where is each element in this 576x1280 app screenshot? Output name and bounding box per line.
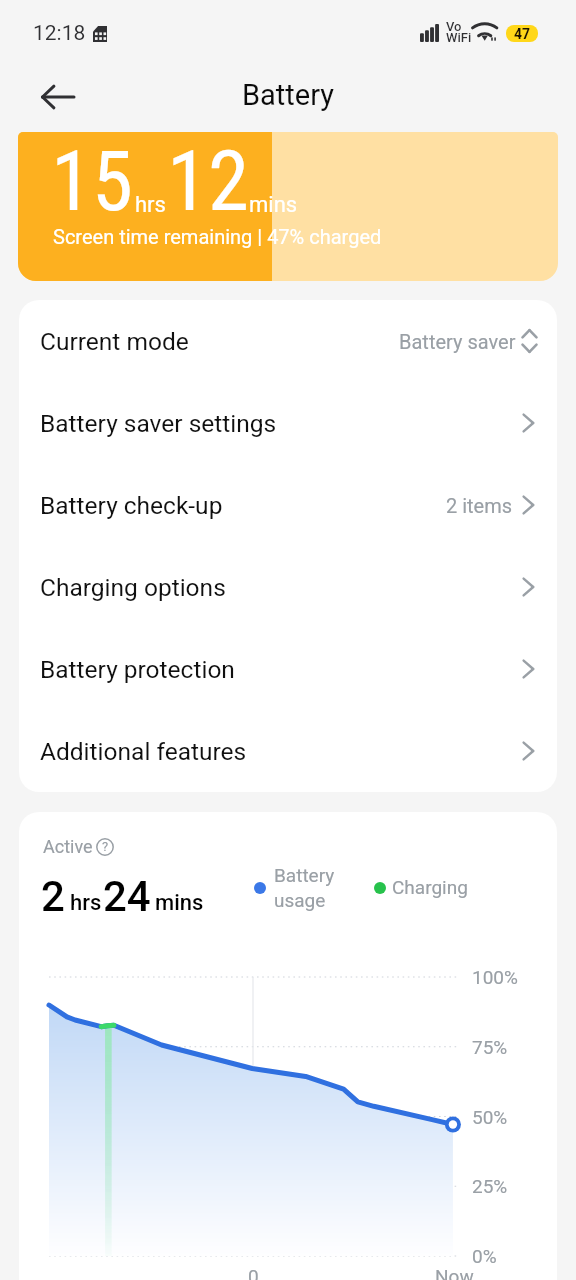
staticText: mins (249, 192, 298, 218)
staticText: 24 (103, 872, 151, 921)
staticText: Now (435, 1265, 474, 1280)
staticText: ? (102, 839, 109, 854)
staticText: 100% (472, 966, 518, 988)
staticText: 50% (472, 1106, 508, 1128)
button[interactable]: Battery check-up (19, 464, 557, 546)
button[interactable]: Charging options (19, 546, 557, 628)
button[interactable]: Additional features (19, 710, 557, 792)
button[interactable]: Current mode (19, 300, 557, 382)
button[interactable]: Help about active time (95, 837, 115, 857)
staticText: 15 (51, 133, 133, 230)
staticText: Battery saver settings (40, 409, 277, 438)
staticText: 47 (514, 26, 531, 42)
staticText: mins (155, 890, 204, 916)
staticText: 2 items (446, 494, 513, 517)
staticText: Active (43, 836, 93, 857)
staticText: WiFi (446, 30, 472, 45)
staticText: Battery protection (40, 655, 235, 684)
staticText: hrs (135, 192, 166, 218)
staticText: Battery check-up (40, 491, 223, 520)
staticText: 0% (472, 1245, 497, 1267)
staticText: Battery (242, 78, 334, 112)
staticText: hrs (70, 890, 102, 916)
staticText: 0 (248, 1265, 259, 1280)
staticText: Charging options (40, 573, 226, 602)
button[interactable]: Battery saver settings (19, 382, 557, 464)
staticText: Screen time remaining | 47% charged (53, 225, 382, 248)
staticText: 2 (41, 872, 65, 921)
staticText: 75% (472, 1036, 508, 1058)
button[interactable]: 15 (18, 132, 558, 281)
staticText: Current mode (40, 327, 189, 356)
staticText: 12:18 (33, 21, 86, 46)
staticText: Battery saver (399, 330, 516, 353)
staticText: Charging (392, 876, 468, 898)
staticText: 12 (167, 133, 249, 230)
button[interactable]: Back (28, 62, 88, 132)
staticText: Additional features (40, 737, 247, 766)
button[interactable]: Battery protection (19, 628, 557, 710)
staticText: 25% (472, 1175, 508, 1197)
staticText: Battery usage (274, 864, 335, 911)
staticText: Vo (446, 19, 462, 34)
